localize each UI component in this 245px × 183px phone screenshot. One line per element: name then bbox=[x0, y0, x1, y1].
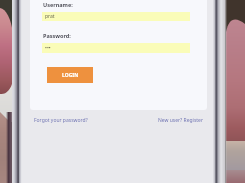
button[interactable]: prat bbox=[42, 12, 190, 21]
staticText: LOGIN bbox=[62, 72, 79, 79]
staticText: Username: bbox=[43, 1, 73, 8]
staticText: ••• bbox=[45, 45, 51, 52]
staticText: Password: bbox=[43, 32, 71, 39]
button[interactable]: LOGIN bbox=[47, 67, 93, 83]
button[interactable]: Forgot your password? bbox=[34, 117, 88, 124]
button[interactable]: ••• bbox=[42, 43, 190, 53]
staticText: prat bbox=[45, 13, 55, 20]
button[interactable]: New user? Register bbox=[158, 117, 203, 124]
